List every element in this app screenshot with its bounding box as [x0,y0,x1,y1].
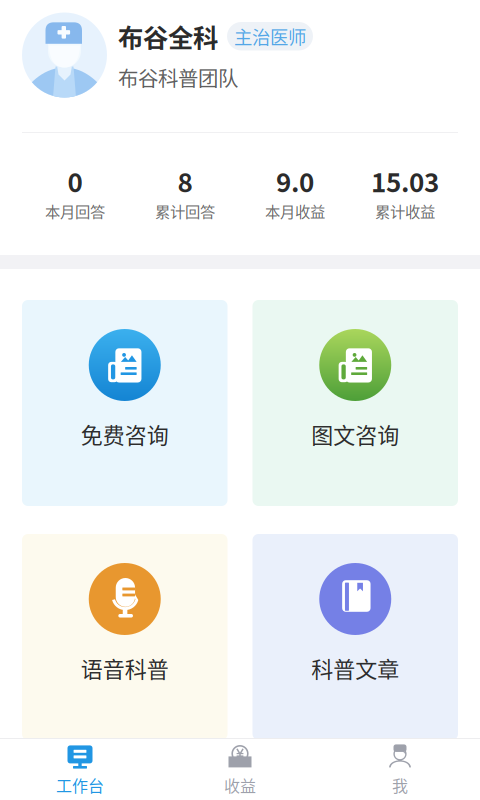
staticText: 累计回答 [155,200,215,222]
staticText: 收益 [224,773,256,797]
staticText: 15.03 [371,162,439,200]
button[interactable]: 科普文章 [252,534,458,740]
staticText: 0 [67,162,82,200]
staticText: 累计收益 [375,200,435,222]
staticText: 语音科普 [81,652,169,684]
staticText: 免费咨询 [81,418,169,450]
button[interactable]: 工作台 [0,739,160,800]
button[interactable]: 图文咨询 [252,300,458,506]
staticText: 图文咨询 [311,418,399,450]
staticText: 布谷科普团队 [118,63,238,92]
button[interactable]: 免费咨询 [22,300,227,506]
button[interactable]: 语音科普 [22,534,227,740]
button[interactable]: 我 [320,739,480,800]
staticText: 9.0 [276,162,314,200]
button[interactable]: 收益 [160,739,320,800]
staticText: 工作台 [56,773,104,797]
staticText: 本月回答 [45,200,105,222]
staticText: 本月收益 [265,200,325,222]
staticText: 科普文章 [311,652,399,684]
staticText: 主治医师 [234,23,306,49]
staticText: 我 [392,773,408,797]
staticText: 布谷全科 [118,18,218,55]
staticText: 8 [177,162,192,200]
